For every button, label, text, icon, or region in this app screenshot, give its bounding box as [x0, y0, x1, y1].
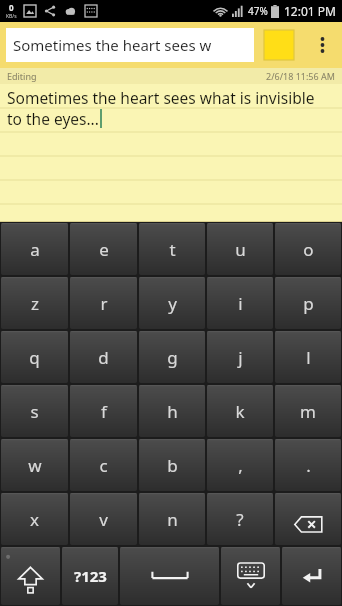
button[interactable]: More options [308, 22, 336, 68]
staticText: . [306, 454, 311, 477]
staticText: KB/s [6, 13, 17, 20]
staticText: s [30, 400, 39, 423]
staticText: Editing [7, 70, 37, 82]
staticText: Sometimes the heart sees w [13, 35, 212, 55]
staticText: 47% [248, 4, 268, 18]
button[interactable]: Delete [275, 493, 341, 545]
button[interactable]: i [207, 277, 273, 329]
button[interactable]: l [275, 331, 341, 383]
button[interactable]: x [1, 493, 68, 545]
staticText: w [28, 454, 42, 477]
staticText: j [238, 346, 243, 369]
button[interactable]: t [139, 223, 205, 275]
button[interactable]: . [275, 439, 341, 491]
staticText: o [303, 238, 314, 261]
staticText: h [167, 400, 178, 423]
button[interactable]: n [139, 493, 205, 545]
staticText: a [30, 238, 40, 261]
button[interactable]: m [275, 385, 341, 437]
button[interactable]: Enter [282, 547, 341, 605]
staticText: x [30, 508, 39, 531]
button[interactable]: s [1, 385, 68, 437]
button[interactable]: v [70, 493, 137, 545]
staticText: d [98, 346, 109, 369]
staticText: q [29, 346, 40, 369]
button[interactable]: a [1, 223, 68, 275]
staticText: ? [236, 508, 244, 531]
staticText: e [99, 238, 109, 261]
button[interactable]: b [139, 439, 205, 491]
staticText: n [167, 508, 178, 531]
button[interactable]: c [70, 439, 137, 491]
staticText: 12:01 PM [284, 3, 336, 19]
staticText: y [168, 292, 177, 315]
staticText: f [101, 400, 107, 423]
button[interactable]: Note colour [264, 30, 294, 60]
staticText: k [235, 400, 245, 423]
staticText: r [100, 292, 108, 315]
staticText: g [167, 346, 178, 369]
button[interactable]: o [275, 223, 341, 275]
button[interactable]: z [1, 277, 68, 329]
button[interactable]: , [207, 439, 273, 491]
staticText: 0 [9, 2, 14, 13]
button[interactable]: r [70, 277, 137, 329]
button[interactable]: g [139, 331, 205, 383]
staticText: i [238, 292, 243, 315]
button[interactable]: h [139, 385, 205, 437]
button[interactable]: u [207, 223, 273, 275]
button[interactable]: k [207, 385, 273, 437]
staticText: to the eyes... [7, 108, 99, 129]
button[interactable]: Sometimes the heart sees w [6, 28, 254, 62]
button[interactable]: e [70, 223, 137, 275]
button[interactable]: Shift [1, 547, 60, 605]
staticText: , [238, 454, 243, 477]
staticText: ?123 [74, 566, 107, 586]
staticText: b [167, 454, 178, 477]
staticText: c [99, 454, 108, 477]
staticText: p [303, 292, 314, 315]
staticText: Sometimes the heart sees what is invisib… [7, 87, 315, 108]
button[interactable]: ?123 [62, 547, 118, 605]
button[interactable]: w [1, 439, 68, 491]
staticText: z [31, 292, 39, 315]
button[interactable]: p [275, 277, 341, 329]
staticText: t [169, 238, 176, 261]
button[interactable]: f [70, 385, 137, 437]
staticText: v [99, 508, 108, 531]
button[interactable]: y [139, 277, 205, 329]
staticText: 2/6/18 11:56 AM [266, 70, 335, 82]
staticText: l [306, 346, 311, 369]
button[interactable]: Hide keyboard [221, 547, 280, 605]
staticText: u [235, 238, 246, 261]
button[interactable]: q [1, 331, 68, 383]
button[interactable]: d [70, 331, 137, 383]
button[interactable]: ? [207, 493, 273, 545]
staticText: m [300, 400, 316, 423]
button[interactable]: Space [120, 547, 219, 605]
button[interactable]: Sometimes the heart sees what is invisib… [0, 84, 342, 222]
button[interactable]: j [207, 331, 273, 383]
